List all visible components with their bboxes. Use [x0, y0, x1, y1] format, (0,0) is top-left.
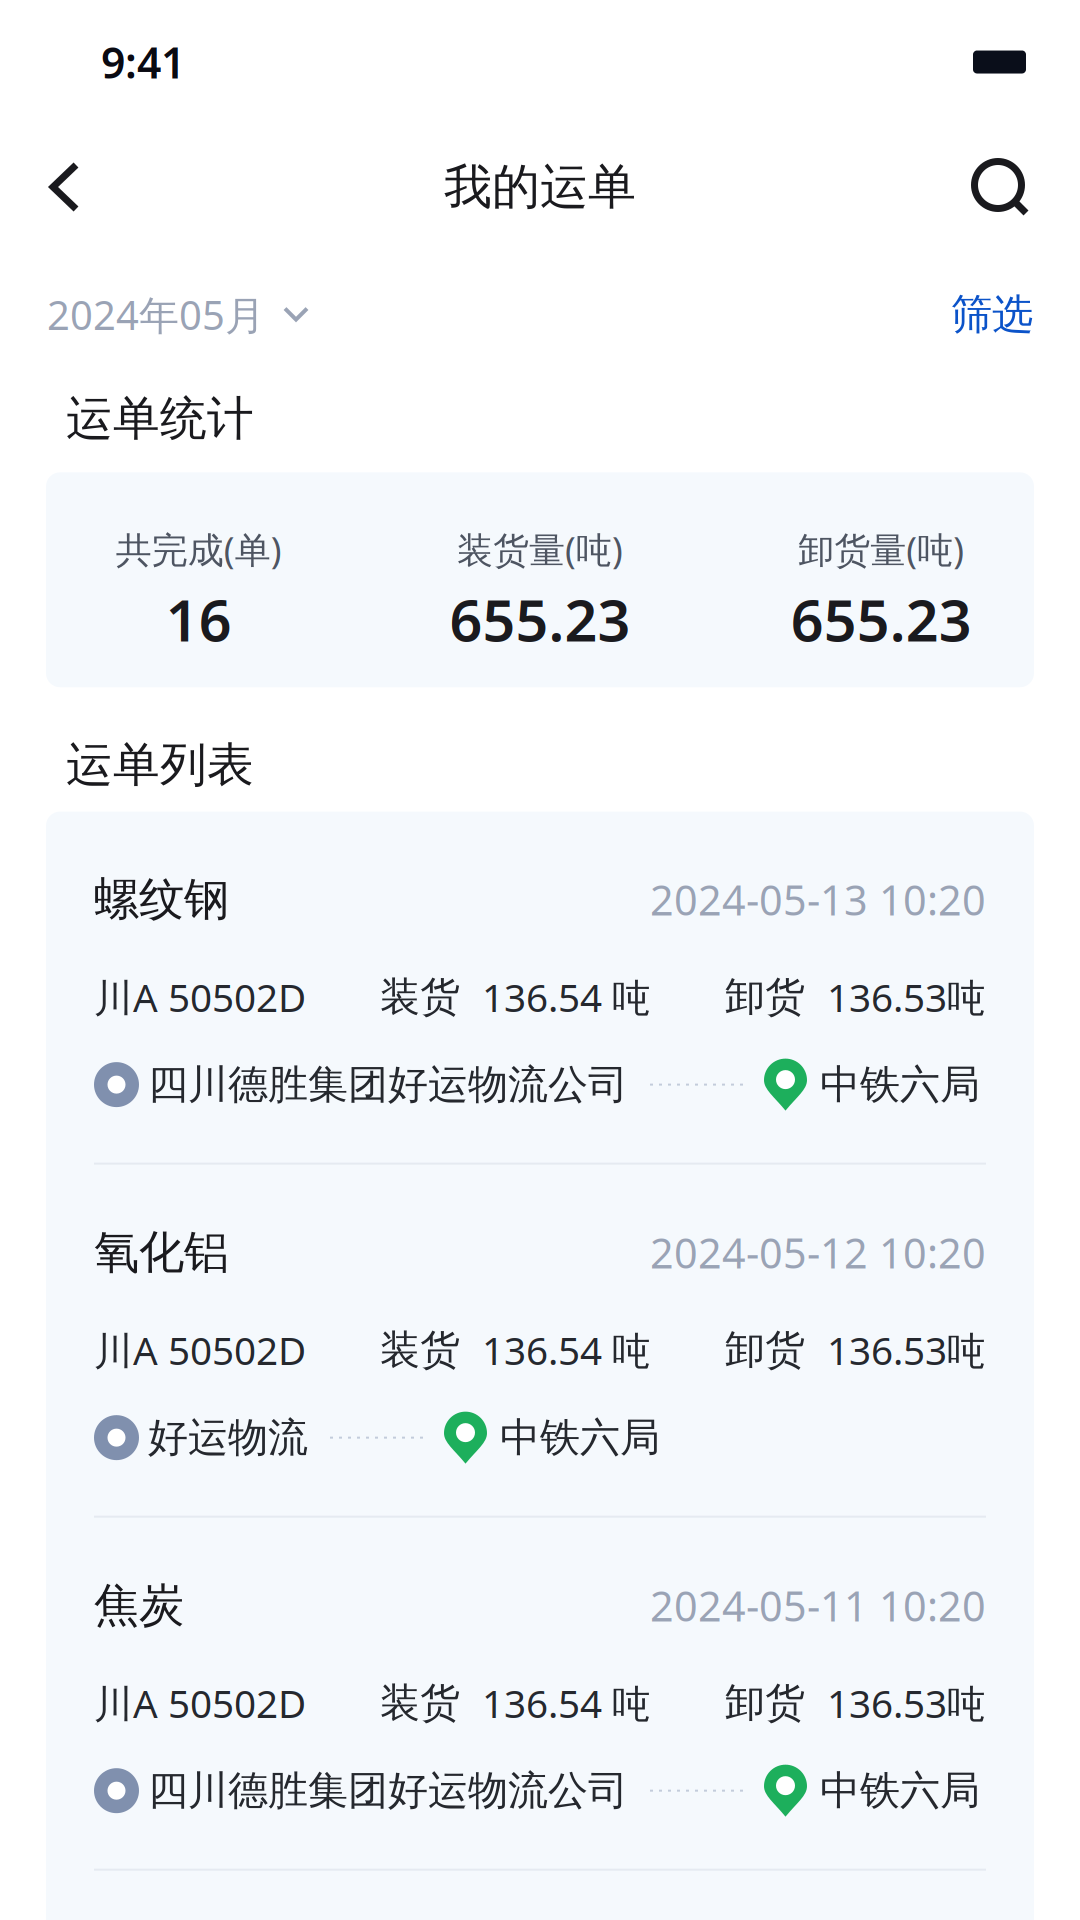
- staticText: 136.53吨: [827, 971, 986, 1023]
- staticText: 氧化铝: [94, 1225, 229, 1280]
- staticText: 卸货: [725, 1325, 805, 1374]
- staticText: 我的运单: [444, 157, 636, 216]
- staticText: 卸货: [725, 972, 805, 1021]
- button[interactable]: 2024年05月: [47, 266, 309, 363]
- staticText: 共完成(单): [116, 525, 282, 573]
- staticText: 中铁六局: [820, 1060, 980, 1109]
- button[interactable]: 螺纹钢: [46, 812, 1034, 1163]
- button[interactable]: 氧化铝: [46, 1165, 1034, 1516]
- staticText: 16: [166, 581, 232, 657]
- staticText: 川A 50502D: [94, 1324, 306, 1376]
- button[interactable]: 焦炭: [46, 1518, 1034, 1869]
- staticText: 136.54 吨: [482, 971, 651, 1023]
- staticText: 螺纹钢: [94, 872, 229, 927]
- staticText: 川A 50502D: [94, 1677, 306, 1729]
- staticText: 装货量(吨): [457, 525, 623, 573]
- staticText: 中铁六局: [820, 1766, 980, 1815]
- staticText: 装货: [380, 1678, 460, 1727]
- staticText: 装货: [380, 1325, 460, 1374]
- staticText: 中铁六局: [500, 1413, 660, 1462]
- staticText: 川A 50502D: [94, 971, 306, 1023]
- staticText: 好运物流: [148, 1413, 308, 1462]
- staticText: 运单统计: [66, 390, 254, 447]
- staticText: 655.23: [449, 581, 630, 657]
- staticText: 9:41: [101, 34, 185, 90]
- staticText: 136.53吨: [827, 1677, 986, 1729]
- staticText: 焦炭: [94, 1578, 184, 1633]
- staticText: 卸货: [725, 1678, 805, 1727]
- staticText: 运单列表: [66, 736, 254, 794]
- staticText: 2024-05-13 10:20: [650, 872, 986, 927]
- staticText: 卸货量(吨): [798, 525, 964, 573]
- staticText: 655.23: [791, 581, 972, 657]
- staticText: 2024-05-12 10:20: [650, 1225, 986, 1280]
- staticText: 装货: [380, 972, 460, 1021]
- staticText: 四川德胜集团好运物流公司: [148, 1766, 628, 1815]
- button[interactable]: Back: [0, 138, 106, 236]
- staticText: 136.54 吨: [482, 1324, 651, 1376]
- staticText: 2024-05-11 10:20: [650, 1578, 986, 1633]
- staticText: 四川德胜集团好运物流公司: [148, 1060, 628, 1109]
- staticText: 2024年05月: [47, 288, 265, 341]
- staticText: 136.54 吨: [482, 1677, 651, 1729]
- staticText: 筛选: [951, 289, 1033, 340]
- staticText: 136.53吨: [827, 1324, 986, 1376]
- button[interactable]: 筛选: [951, 267, 1033, 362]
- button[interactable]: Search: [949, 138, 1080, 236]
